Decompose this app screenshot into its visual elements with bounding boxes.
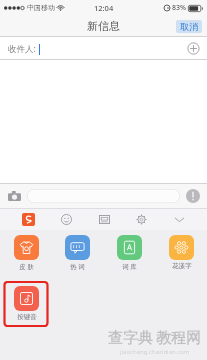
button[interactable] bbox=[27, 189, 180, 203]
button[interactable]: 发送 bbox=[185, 188, 201, 204]
button[interactable]: 热 词 bbox=[65, 235, 90, 271]
button[interactable]: 表情 bbox=[56, 209, 76, 229]
staticText: 收件人: bbox=[8, 43, 36, 55]
button[interactable]: 设置 bbox=[131, 209, 151, 229]
staticText: 取消 bbox=[180, 21, 198, 32]
button[interactable]: 搜狗输入法 bbox=[18, 209, 38, 229]
staticText: jiaocheng.chazidian.com bbox=[120, 348, 190, 356]
staticText: 12:04 bbox=[94, 3, 114, 13]
staticText: 新信息 bbox=[87, 19, 120, 33]
button[interactable]: 添加联系人 bbox=[187, 42, 200, 55]
staticText: 83% bbox=[172, 3, 186, 13]
staticText: 查字典 bbox=[108, 329, 153, 348]
staticText: 花漾字 bbox=[172, 262, 192, 270]
staticText: 皮 肤 bbox=[19, 262, 34, 271]
button[interactable]: 取消 bbox=[176, 20, 202, 33]
button[interactable]: 词 库 bbox=[117, 235, 142, 271]
button[interactable]: 剪贴板 bbox=[94, 209, 114, 229]
staticText: 按键音 bbox=[17, 313, 37, 321]
button[interactable]: 皮 肤 bbox=[14, 235, 39, 271]
staticText: 热 词 bbox=[70, 262, 85, 271]
button[interactable]: 相机 bbox=[6, 188, 22, 204]
staticText: 中国移动 bbox=[27, 3, 55, 12]
staticText: 教程网 bbox=[156, 329, 201, 348]
button[interactable]: 花漾字 bbox=[169, 235, 194, 270]
button[interactable]: 收件人: bbox=[0, 37, 207, 60]
button[interactable]: 按键音 bbox=[14, 286, 39, 321]
button[interactable]: 收起键盘 bbox=[169, 209, 189, 229]
staticText: 词 库 bbox=[122, 262, 137, 271]
